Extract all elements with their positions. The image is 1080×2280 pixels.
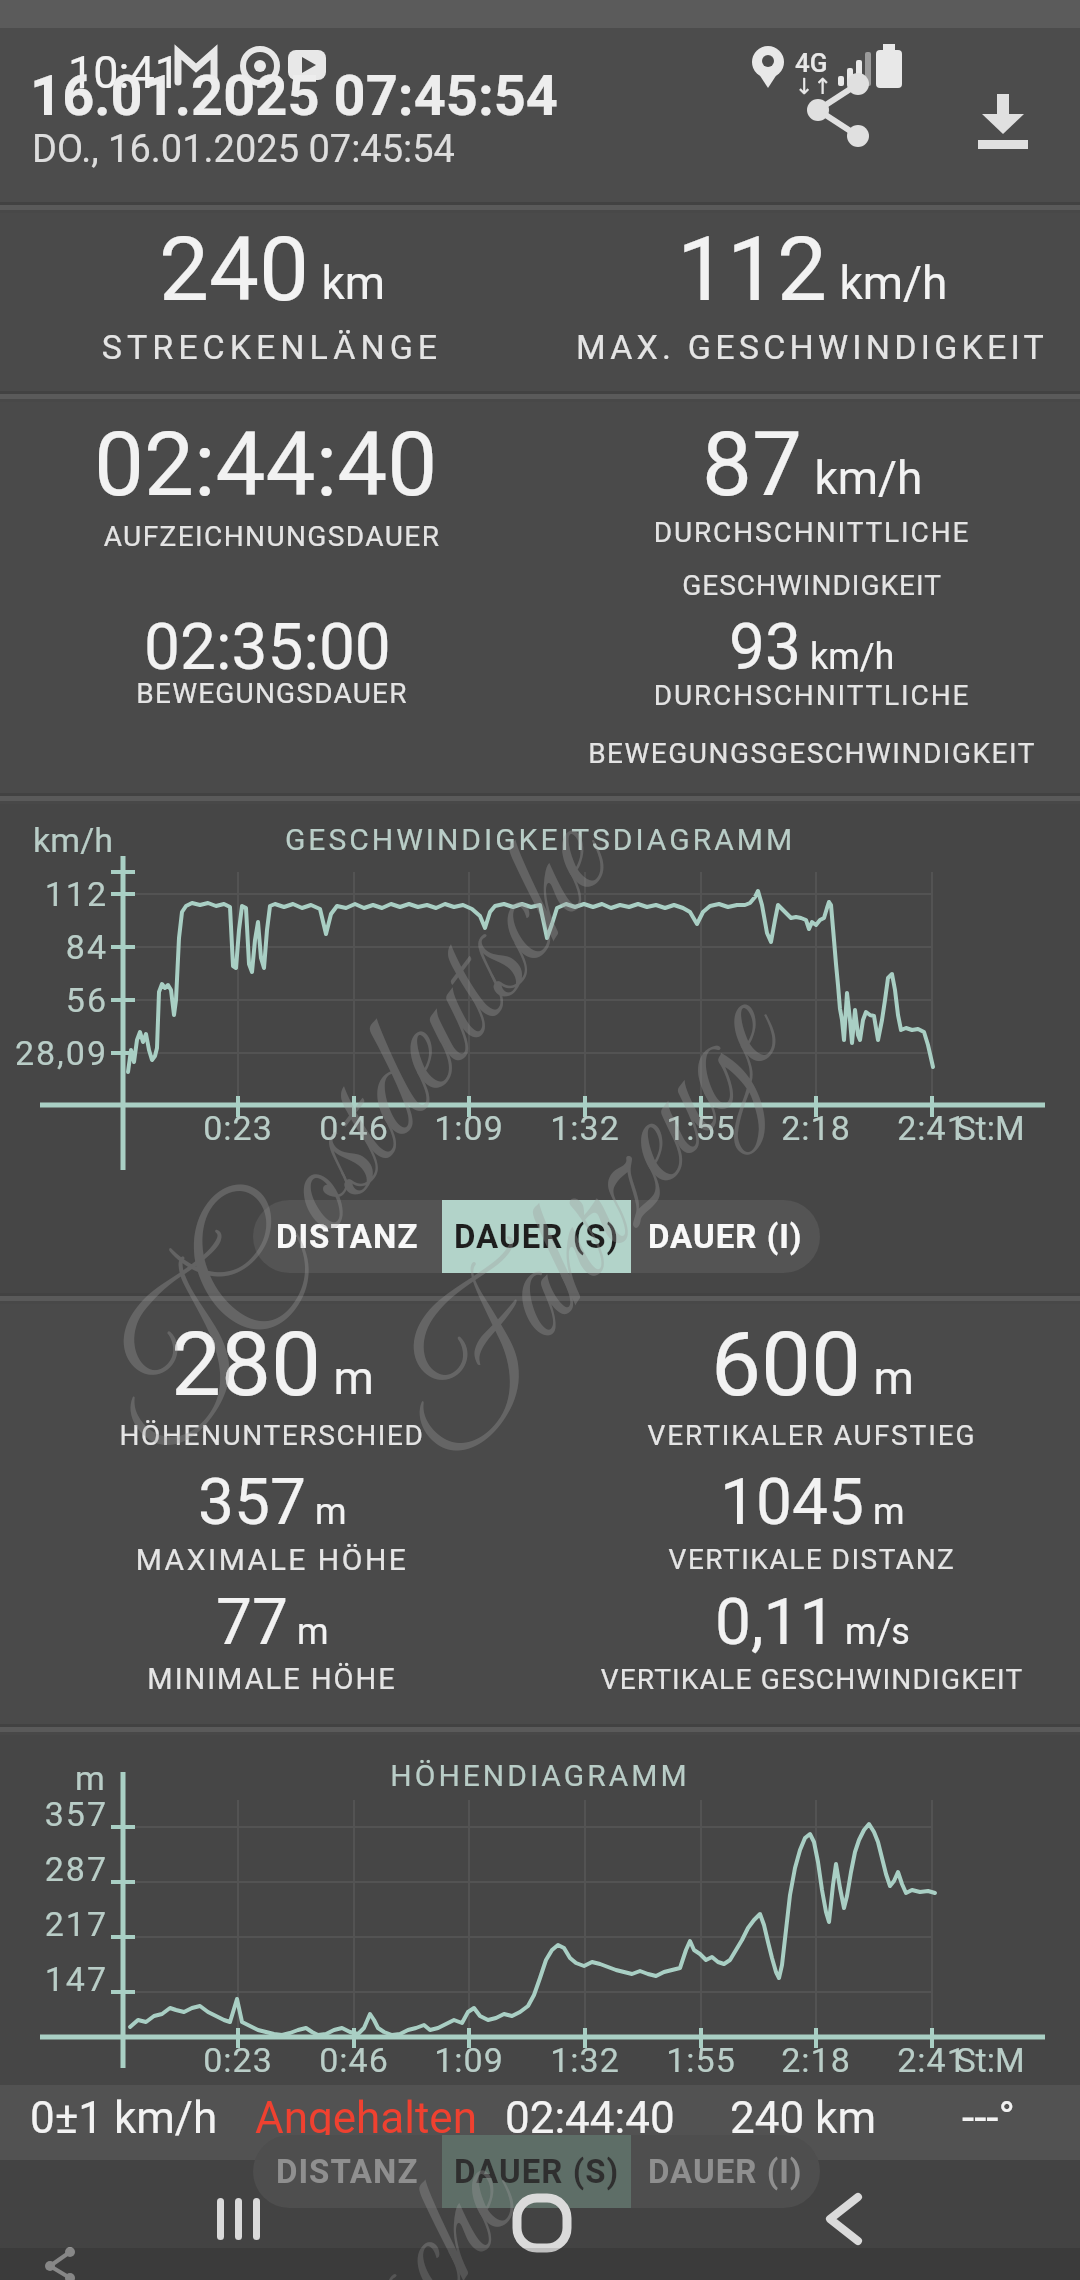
staticText: 600 (711, 1312, 862, 1416)
staticText: MINIMALE HÖHE (0, 1662, 552, 1696)
staticText: MAX. GESCHWINDIGKEIT (532, 327, 1080, 367)
staticText: 357 (0, 1794, 108, 1834)
staticText: AUFZEICHNUNGSDAUER (0, 520, 552, 553)
staticText: DO., 16.01.2025 07:45:54 (32, 127, 732, 172)
staticText: DISTANZ (276, 2152, 419, 2191)
staticText: DAUER (I) (648, 1217, 803, 1256)
staticText: 1:55 (641, 1108, 761, 1148)
staticText: 02:44:40 (505, 2092, 805, 2144)
staticText: ↓↑ (795, 74, 835, 100)
staticText: GESCHWINDIGKEIT (532, 569, 1080, 602)
staticText: DAUER (S) (454, 1217, 620, 1256)
staticText: St:M (930, 2040, 1050, 2080)
button[interactable] (502, 2183, 582, 2263)
staticText: 0,11 (715, 1585, 836, 1660)
staticText: 0±1 km/h (30, 2092, 330, 2144)
staticText: km/h (803, 451, 923, 505)
button[interactable]: DAUER (S) (442, 2135, 631, 2208)
staticText: 02:35:00 (144, 610, 391, 685)
staticText: DAUER (I) (648, 2152, 803, 2191)
staticText: m (862, 1351, 914, 1405)
staticText: 93 (729, 610, 801, 685)
staticText: DAUER (S) (454, 2152, 620, 2191)
staticText: VERTIKALE DISTANZ (532, 1543, 1080, 1576)
staticText: Angehalten (255, 2092, 555, 2144)
staticText: km/h (801, 636, 895, 678)
staticText: GESCHWINDIGKEITSDIAGRAMM (140, 822, 940, 857)
staticText: 240 km (730, 2092, 1030, 2144)
staticText: St:M (930, 1108, 1050, 1148)
staticText: 2:41 (872, 2040, 992, 2080)
staticText: 1:32 (525, 2040, 645, 2080)
button[interactable]: DAUER (I) (631, 2135, 820, 2208)
staticText: m (288, 1611, 329, 1653)
staticText: DISTANZ (276, 1217, 419, 1256)
staticText: km/h (18, 820, 128, 860)
staticText: 287 (0, 1849, 108, 1889)
button[interactable] (802, 2179, 882, 2259)
staticText: MAXIMALE HÖHE (0, 1542, 552, 1577)
staticText: m/s (836, 1611, 910, 1653)
staticText: DURCHSCHNITTLICHE (532, 516, 1080, 549)
staticText: km (310, 256, 386, 310)
staticText: DURCHSCHNITTLICHE (532, 679, 1080, 712)
staticText: 0:46 (294, 1108, 414, 1148)
staticText: 1:55 (641, 2040, 761, 2080)
staticText: 0:23 (178, 1108, 298, 1148)
button[interactable]: DAUER (S) (442, 1200, 631, 1273)
staticText: VERTIKALER AUFSTIEG (532, 1419, 1080, 1452)
staticText: 2:18 (756, 1108, 876, 1148)
staticText: 112 (0, 874, 108, 914)
staticText: 10:41 (68, 46, 198, 99)
staticText: BEWEGUNGSDAUER (0, 677, 552, 710)
staticText: 357 (198, 1465, 306, 1540)
button[interactable]: DISTANZ (253, 2135, 442, 2208)
staticText: 1045 (720, 1465, 864, 1540)
staticText: m (864, 1491, 905, 1533)
staticText: 0:46 (294, 2040, 414, 2080)
staticText: HÖHENUNTERSCHIED (0, 1419, 552, 1452)
staticText: km/h (828, 256, 948, 310)
staticText: TC ostdeutsche (0, 2128, 568, 2280)
staticText: m (40, 1758, 140, 1798)
staticText: 147 (0, 1959, 108, 1999)
staticText: 28,09 (0, 1033, 108, 1073)
staticText: 87 (702, 412, 803, 516)
staticText: 16.01.2025 07:45:54 (30, 63, 730, 129)
staticText: 77 (216, 1585, 288, 1660)
button[interactable] (968, 88, 1038, 152)
button[interactable]: DISTANZ (253, 1200, 442, 1273)
staticText: 02:44:40 (94, 412, 438, 516)
staticText: 56 (0, 980, 108, 1020)
button[interactable] (800, 70, 880, 150)
staticText: m (306, 1491, 347, 1533)
staticText: 1:32 (525, 1108, 645, 1148)
staticText: BEWEGUNGSGESCHWINDIGKEIT (532, 737, 1080, 770)
staticText: Fahrzeuge (351, 961, 829, 1498)
staticText: 240 (159, 217, 310, 321)
staticText: 112 (677, 217, 828, 321)
staticText: TC ostdeutsche (62, 788, 658, 1492)
staticText: 0:23 (178, 2040, 298, 2080)
staticText: 4G (795, 48, 835, 78)
staticText: 2:18 (756, 2040, 876, 2080)
staticText: STRECKENLÄNGE (0, 327, 552, 367)
staticText: VERTIKALE GESCHWINDIGKEIT (532, 1663, 1080, 1696)
staticText: ---° (962, 2092, 1080, 2144)
button[interactable] (198, 2178, 278, 2258)
staticText: 217 (0, 1904, 108, 1944)
staticText: HÖHENDIAGRAMM (140, 1758, 940, 1793)
staticText: 2:41 (872, 1108, 992, 1148)
staticText: 1:09 (409, 2040, 529, 2080)
staticText: 1:09 (409, 1108, 529, 1148)
staticText: 280 (171, 1312, 322, 1416)
staticText: m (322, 1351, 374, 1405)
button[interactable]: DAUER (I) (631, 1200, 820, 1273)
staticText: 84 (0, 927, 108, 967)
